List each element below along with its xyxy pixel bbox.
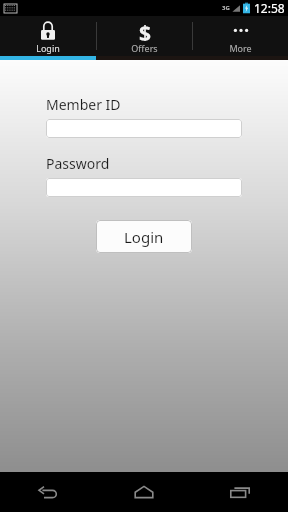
button[interactable]: Home bbox=[118, 474, 170, 510]
staticText: $ bbox=[139, 19, 152, 41]
staticText: 12:58 bbox=[254, 0, 285, 16]
staticText: Member ID bbox=[46, 95, 121, 114]
button[interactable]: Offers bbox=[97, 16, 192, 56]
button[interactable] bbox=[46, 119, 242, 138]
button[interactable]: Recent apps bbox=[214, 474, 266, 510]
staticText: Login bbox=[124, 227, 164, 247]
button[interactable] bbox=[46, 178, 242, 197]
other: Login bbox=[38, 20, 58, 41]
staticText: Password bbox=[46, 154, 110, 173]
button[interactable]: Login bbox=[0, 16, 96, 56]
staticText: Login bbox=[36, 42, 60, 54]
other: More bbox=[230, 20, 252, 40]
button[interactable]: More bbox=[193, 16, 288, 56]
button[interactable]: Back bbox=[22, 474, 74, 510]
other: Offers bbox=[134, 19, 156, 41]
staticText: More bbox=[229, 42, 252, 54]
button[interactable]: Login bbox=[96, 220, 192, 253]
staticText: 3G bbox=[222, 4, 230, 12]
staticText: Offers bbox=[131, 42, 158, 54]
